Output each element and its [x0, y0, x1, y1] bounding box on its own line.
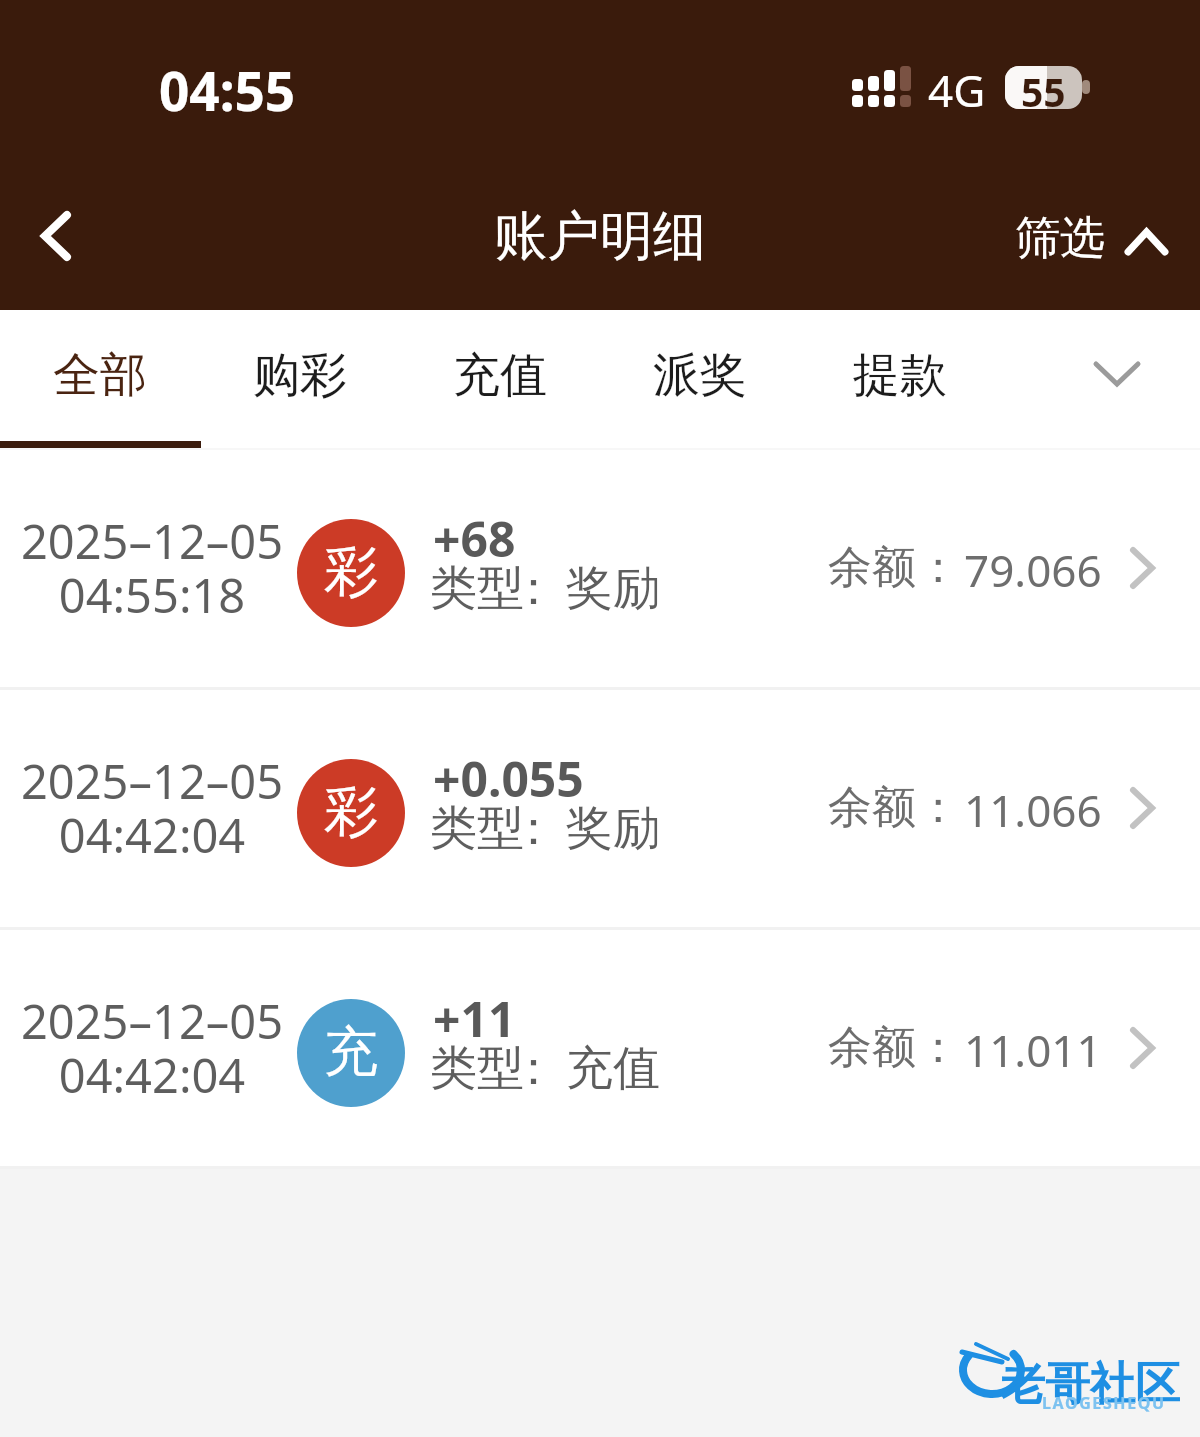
button[interactable]: 全部 [0, 310, 200, 448]
staticText: 类型 [430, 799, 524, 858]
staticText: 充 [324, 1018, 378, 1086]
staticText: 2025–12–05 [4, 509, 300, 573]
button[interactable]: 筛选 [1005, 196, 1178, 277]
staticText: 账户明细 [494, 203, 706, 270]
staticText: 充值 [566, 1039, 660, 1098]
staticText: 余额： [828, 540, 960, 595]
staticText: 全部 [53, 346, 147, 405]
staticText: +11 [433, 986, 516, 1051]
staticText: 类型 [430, 559, 524, 618]
staticText: 2025–12–05 [4, 989, 300, 1053]
button[interactable]: More filters [1062, 310, 1172, 448]
staticText: +68 [433, 506, 516, 571]
button[interactable]: 2025–12–05 [0, 928, 1200, 1167]
staticText: 11.066 [964, 780, 1102, 840]
staticText: LAOGESHEQU [1042, 1392, 1166, 1414]
button[interactable]: 2025–12–05 [0, 448, 1200, 687]
staticText: ： [510, 799, 557, 858]
button[interactable]: 购彩 [200, 310, 400, 448]
staticText: 奖励 [566, 559, 660, 618]
staticText: 彩 [324, 778, 378, 846]
button[interactable]: 充值 [400, 310, 600, 448]
staticText: 4G [928, 60, 986, 120]
button[interactable]: 派奖 [600, 310, 800, 448]
button[interactable]: 提款 [800, 310, 1000, 448]
staticText: 购彩 [253, 346, 347, 405]
staticText: ： [510, 1039, 557, 1098]
staticText: 老哥社区 [1000, 1356, 1180, 1413]
staticText: +0.055 [433, 746, 584, 811]
staticText: 2025–12–05 [4, 749, 300, 813]
staticText: 派奖 [653, 346, 747, 405]
staticText: 充值 [453, 346, 547, 405]
staticText: 04:55 [159, 54, 296, 126]
staticText: 04:42:04 [4, 1043, 300, 1107]
staticText: 04:55:18 [4, 563, 300, 627]
staticText: 55 [1021, 65, 1066, 108]
staticText: 彩 [324, 538, 378, 606]
staticText: 04:42:04 [4, 803, 300, 867]
staticText: 余额： [828, 1020, 960, 1075]
button[interactable]: 2025–12–05 [0, 688, 1200, 927]
button[interactable]: Back [8, 188, 104, 284]
staticText: 余额： [828, 780, 960, 835]
staticText: 筛选 [1015, 210, 1105, 267]
staticText: 提款 [853, 346, 947, 405]
staticText: ： [510, 559, 557, 618]
staticText: 奖励 [566, 799, 660, 858]
staticText: 11.011 [964, 1020, 1102, 1080]
staticText: 类型 [430, 1039, 524, 1098]
staticText: 79.066 [964, 540, 1102, 600]
